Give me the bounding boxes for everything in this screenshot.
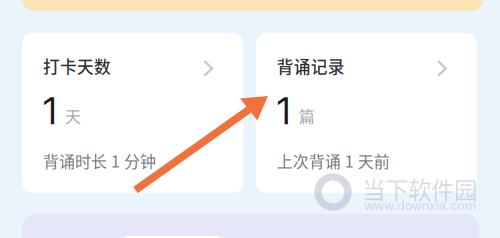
staticText: 篇 [299,104,315,127]
button[interactable]: 背诵记录 [256,33,477,193]
staticText: 打卡天数 [43,54,111,78]
button[interactable]: 打卡天数 [22,33,243,193]
staticText: 背诵时长 1 分钟 [43,149,156,172]
staticText: 背诵记录 [277,54,345,78]
staticText: 上次背诵 1 天前 [277,149,390,172]
staticText: 当下软件园 [362,172,477,206]
staticText: 1 [277,88,291,133]
staticText: 1 [43,88,57,133]
staticText: 天 [65,104,81,127]
staticText: www.downxia.com [364,198,476,213]
